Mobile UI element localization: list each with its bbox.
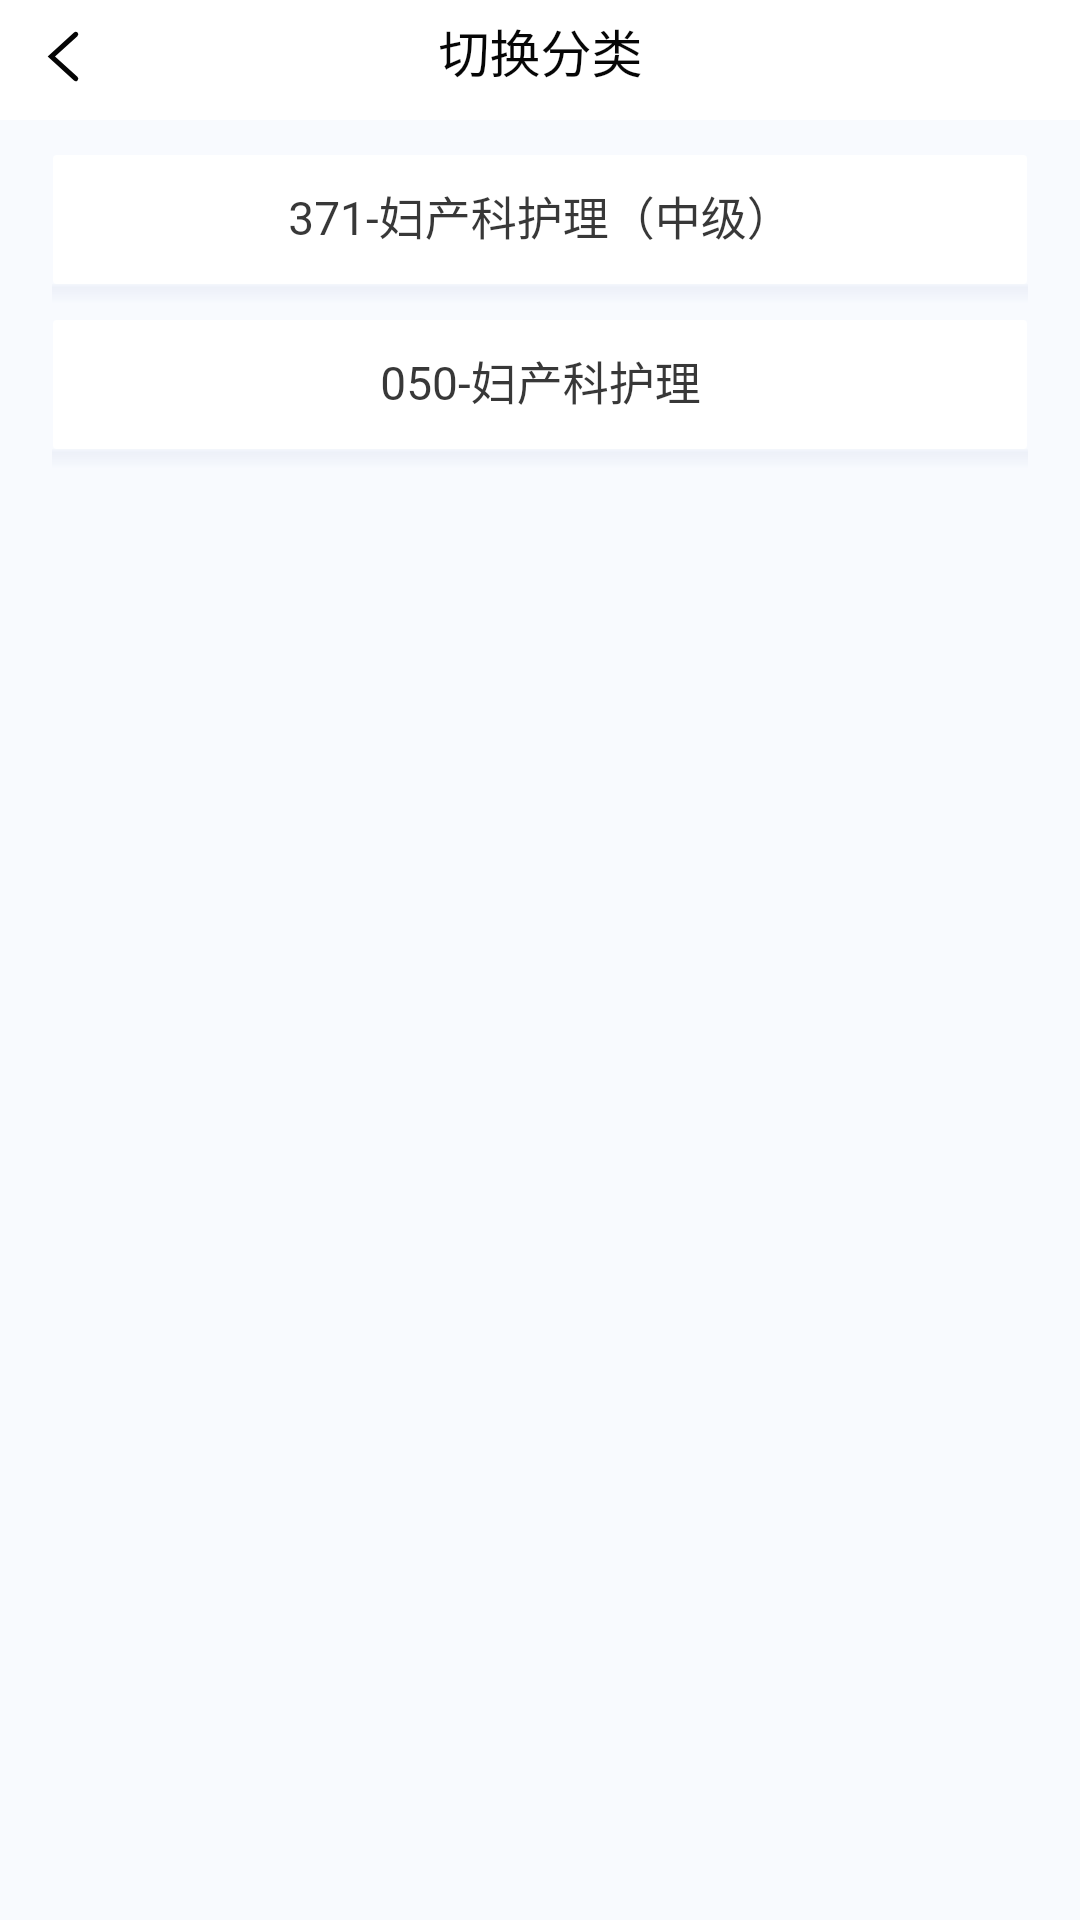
button[interactable]: Back — [0, 0, 120, 120]
staticText: 371-妇产科护理（中级） — [288, 182, 793, 249]
button[interactable]: 371-妇产科护理（中级） — [53, 155, 1027, 284]
button[interactable]: 050-妇产科护理 — [53, 320, 1027, 449]
staticText: 切换分类 — [438, 14, 643, 88]
staticText: 050-妇产科护理 — [380, 347, 701, 414]
